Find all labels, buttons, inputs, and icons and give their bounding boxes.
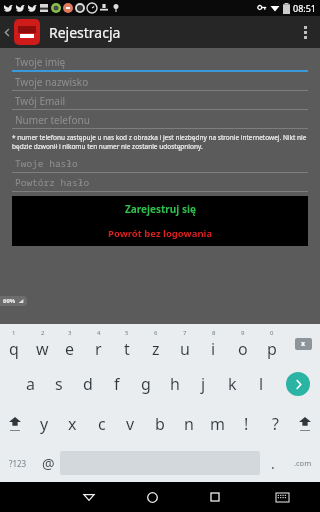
staticText: z (152, 338, 160, 360)
button[interactable]: ! (232, 404, 261, 444)
button[interactable]: Twoje hasło (12, 155, 308, 174)
staticText: 5 (125, 329, 129, 337)
button[interactable]: b (145, 404, 174, 444)
button[interactable]: Twoje nazwisko (12, 73, 308, 92)
button[interactable]: 8 (199, 324, 228, 364)
button[interactable]: 6 (141, 324, 170, 364)
button[interactable]: Back (68, 482, 110, 512)
staticText: j (201, 373, 206, 395)
button[interactable]: Zarejestruj się (12, 196, 308, 221)
staticText: l (259, 373, 264, 395)
staticText: Zarejestruj się (125, 202, 196, 216)
staticText: 2 (41, 329, 45, 337)
staticText: 08:51 (293, 2, 317, 14)
staticText: m (210, 413, 225, 435)
staticText: n (184, 413, 194, 435)
button[interactable]: k (218, 364, 247, 404)
staticText: 6 (154, 329, 158, 337)
button[interactable]: 4 (84, 324, 112, 364)
button[interactable]: y (30, 404, 58, 444)
button[interactable]: a (16, 364, 44, 404)
staticText: e (65, 338, 75, 360)
button[interactable]: 5 (112, 324, 141, 364)
staticText: 3 (68, 329, 72, 337)
staticText: 69% (3, 297, 16, 305)
button[interactable]: l (247, 364, 276, 404)
button[interactable]: Shift (290, 404, 320, 444)
button[interactable]: g (131, 364, 160, 404)
button[interactable]: Home (131, 482, 173, 512)
staticText: a (26, 373, 35, 395)
staticText: 0 (270, 329, 274, 337)
button[interactable]: 2 (28, 324, 56, 364)
button[interactable]: x (58, 404, 87, 444)
button[interactable]: 9 (228, 324, 257, 364)
staticText: Numer telefonu (15, 113, 90, 127)
button[interactable]: Navigate up (0, 16, 14, 48)
staticText: Powtórz hasło (15, 176, 90, 189)
staticText: t (124, 338, 130, 360)
button[interactable]: More options (290, 16, 320, 48)
button[interactable]: s (44, 364, 73, 404)
button[interactable]: m (203, 404, 232, 444)
staticText: 7 (183, 329, 187, 337)
staticText: 1 (12, 329, 16, 337)
button[interactable]: ?123 (0, 444, 36, 482)
button[interactable]: Powrót bez logowania (12, 221, 308, 246)
staticText: r (95, 338, 102, 360)
staticText: ! (244, 413, 249, 435)
staticText: Twoje imię (15, 55, 66, 69)
button[interactable]: Shift (0, 404, 30, 444)
button[interactable]: 0 (257, 324, 286, 364)
staticText: b (155, 413, 165, 435)
staticText: i (211, 338, 216, 360)
staticText: k (228, 373, 237, 395)
button[interactable]: 1 (0, 324, 28, 364)
button[interactable]: Recent apps (194, 482, 236, 512)
staticText: s (55, 373, 63, 395)
button[interactable]: 3 (56, 324, 84, 364)
staticText: Powrót bez logowania (108, 227, 213, 240)
button[interactable]: n (174, 404, 203, 444)
staticText: @ (42, 454, 55, 473)
staticText: Twoje nazwisko (15, 75, 89, 89)
button[interactable]: @ (36, 444, 60, 482)
button[interactable]: . (260, 444, 286, 482)
staticText: * numer telefonu zastępuje u nas kod z o… (12, 133, 308, 151)
staticText: Twoje hasło (15, 157, 78, 170)
button[interactable]: Powtórz hasło (12, 174, 308, 193)
staticText: u (180, 338, 190, 360)
staticText: w (36, 338, 49, 360)
button[interactable]: j (189, 364, 218, 404)
staticText: .com (294, 458, 312, 468)
staticText: g (141, 373, 151, 395)
button[interactable]: Delete (286, 324, 320, 364)
button[interactable]: Next (276, 364, 320, 404)
button[interactable]: ? (261, 404, 290, 444)
staticText: y (40, 413, 49, 435)
staticText: h (170, 373, 180, 395)
button[interactable]: Twój Email (12, 92, 308, 111)
staticText: d (83, 373, 93, 395)
staticText: ? (272, 413, 279, 435)
staticText: ?123 (9, 458, 27, 469)
button[interactable]: Twoje imię (12, 53, 308, 73)
button[interactable]: f (102, 364, 131, 404)
button[interactable]: .com (286, 444, 320, 482)
button[interactable]: h (160, 364, 189, 404)
staticText: . (271, 454, 275, 473)
button[interactable]: v (116, 404, 145, 444)
staticText: 8 (212, 329, 216, 337)
button[interactable]: d (73, 364, 102, 404)
button[interactable]: 7 (170, 324, 199, 364)
staticText: Rejestracja (49, 23, 121, 42)
button[interactable]: Switch keyboard (261, 482, 303, 512)
staticText: 9 (241, 329, 245, 337)
staticText: p (267, 338, 277, 360)
staticText: x (301, 339, 306, 349)
button[interactable]: c (87, 404, 116, 444)
staticText: c (98, 413, 106, 435)
staticText: o (238, 338, 248, 360)
button[interactable]: Numer telefonu (12, 111, 308, 130)
